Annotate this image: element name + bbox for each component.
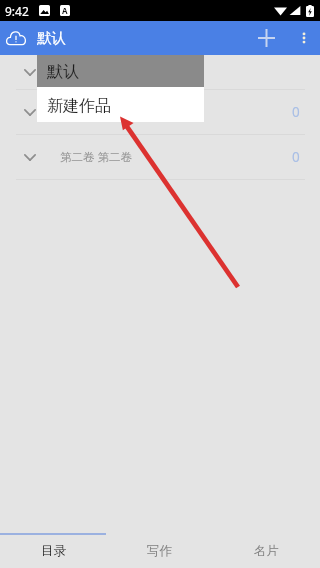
button[interactable]: 新建作品 bbox=[37, 87, 204, 122]
staticText: A bbox=[62, 5, 68, 16]
staticText: 目录 bbox=[41, 543, 66, 559]
button[interactable]: More options bbox=[288, 22, 320, 54]
staticText: 9:42 bbox=[5, 3, 29, 19]
staticText: 写作 bbox=[147, 543, 172, 559]
staticText: 第二卷 第二卷 bbox=[60, 149, 132, 165]
button[interactable]: 目录 bbox=[0, 533, 106, 568]
button[interactable]: Add bbox=[250, 22, 282, 54]
staticText: 名片 bbox=[254, 543, 279, 559]
staticText: 默认 bbox=[37, 29, 66, 47]
button[interactable]: 默认 bbox=[37, 55, 204, 87]
staticText: 0 bbox=[292, 103, 300, 121]
button[interactable]: Cloud sync status bbox=[1, 23, 31, 53]
button[interactable] bbox=[0, 55, 320, 89]
button[interactable]: 名片 bbox=[213, 533, 320, 568]
button[interactable]: 0 bbox=[0, 90, 320, 134]
staticText: 新建作品 bbox=[47, 96, 111, 116]
staticText: 0 bbox=[292, 148, 300, 166]
button[interactable]: 写作 bbox=[106, 533, 213, 568]
button[interactable]: 第二卷 第二卷 bbox=[0, 135, 320, 179]
staticText: 默认 bbox=[47, 62, 79, 82]
